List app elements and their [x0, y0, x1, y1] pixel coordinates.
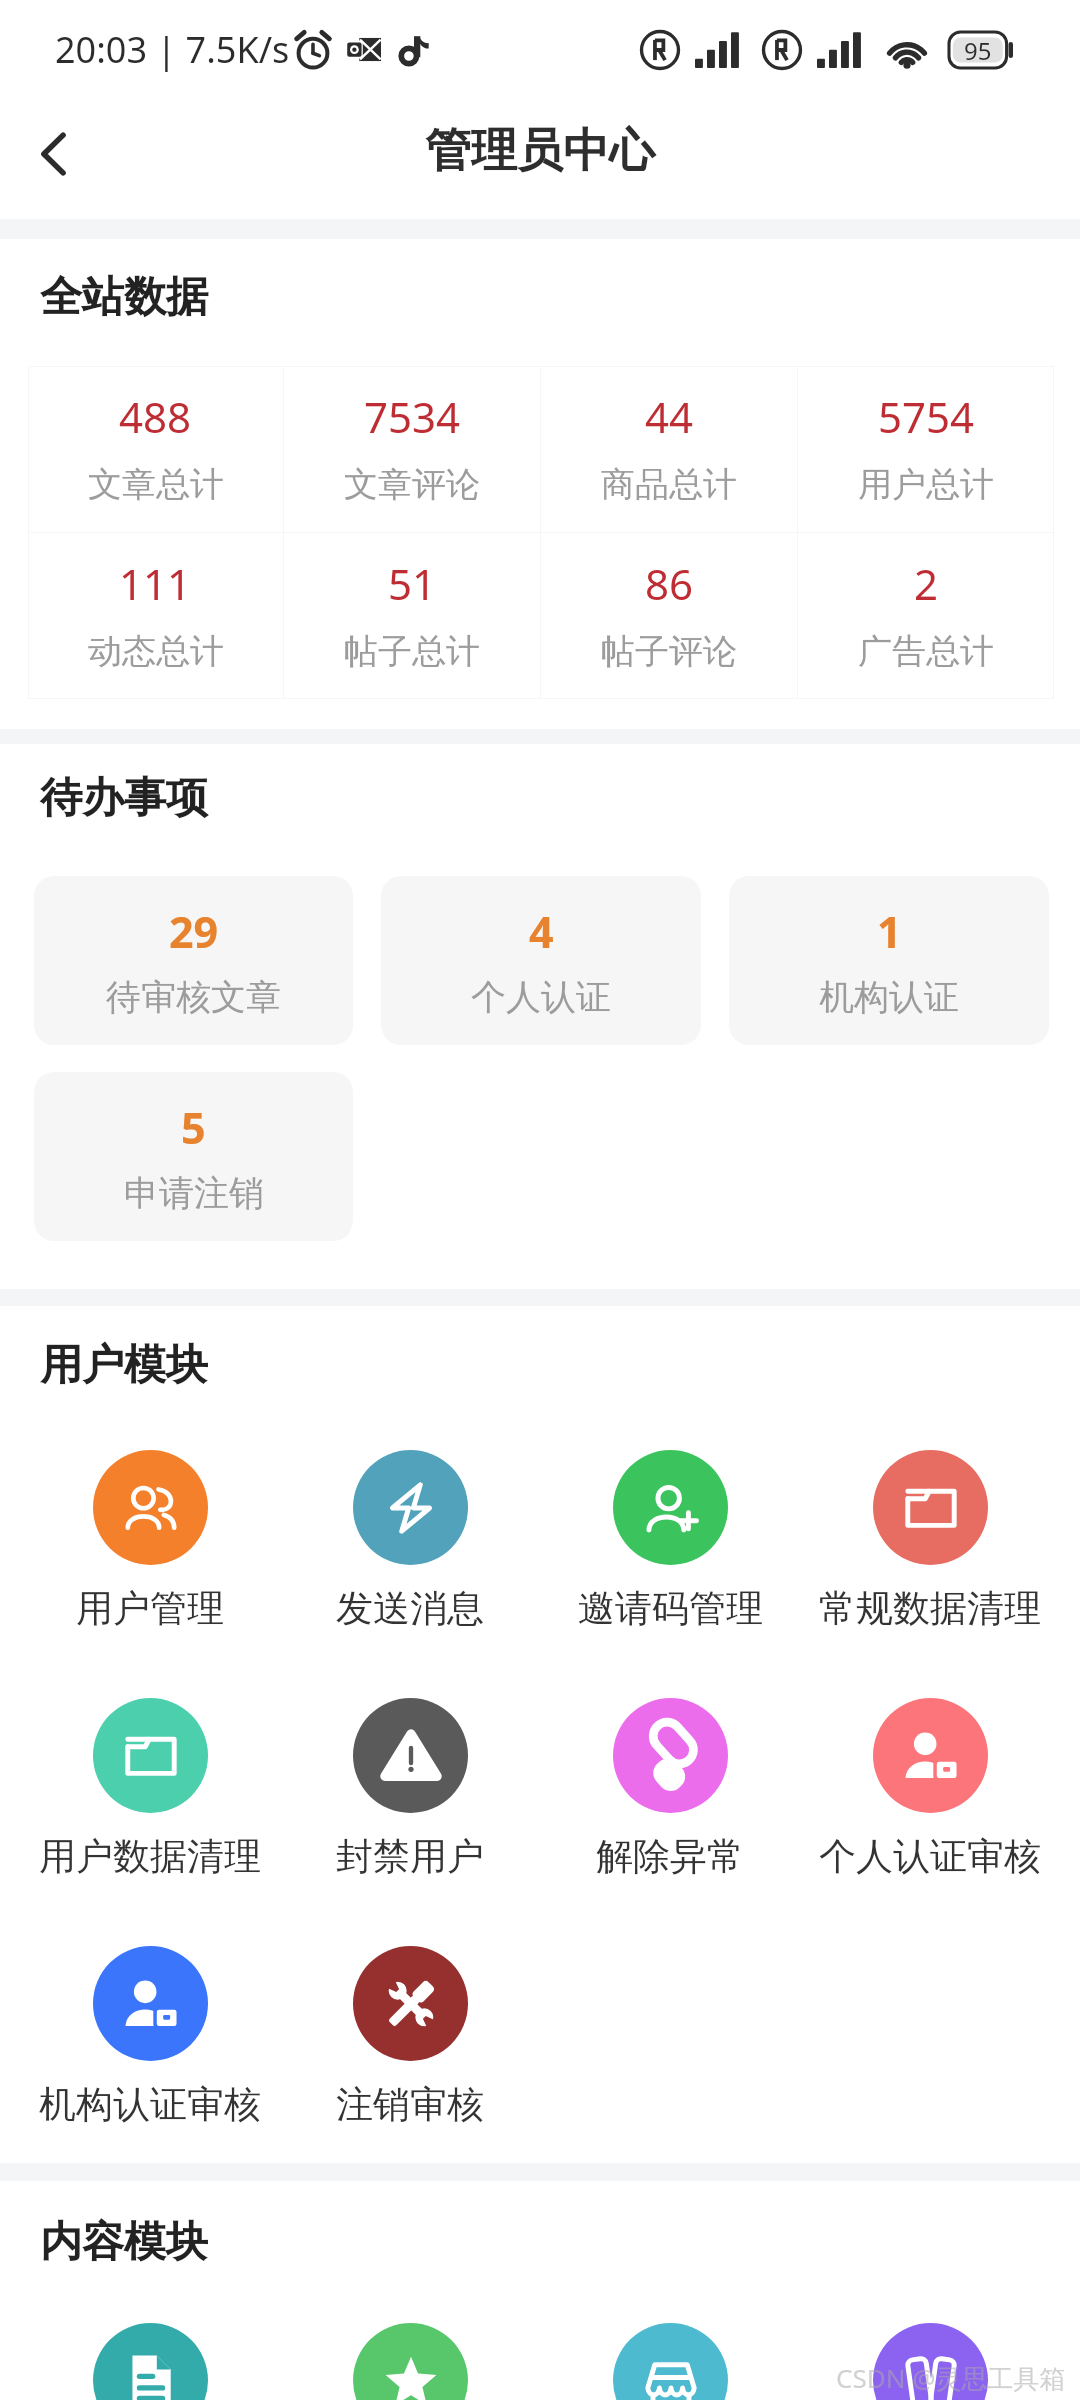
staticText: 4 [529, 902, 554, 961]
staticText: 用户模块 [40, 1339, 208, 1392]
staticText: 20:03 | 7.5K/s [55, 25, 290, 74]
staticText: 5754 [878, 388, 975, 445]
staticText: 个人认证审核 [819, 1833, 1041, 1880]
button[interactable]: 1 [729, 876, 1049, 1045]
button[interactable]: 注销审核 [280, 1946, 540, 2128]
staticText: 申请注销 [124, 1171, 264, 1215]
staticText: 待审核文章 [106, 975, 281, 1019]
button[interactable]: 解除异常 [540, 1698, 800, 1880]
staticText: 帖子总计 [344, 630, 480, 673]
staticText: 机构认证 [819, 975, 959, 1019]
staticText: 1 [877, 902, 902, 961]
button[interactable]: 常规数据清理 [800, 1450, 1060, 1632]
staticText: 常规数据清理 [819, 1585, 1041, 1632]
staticText: 动态总计 [88, 630, 224, 673]
button[interactable]: 个人认证审核 [800, 1698, 1060, 1880]
button[interactable]: 51 [284, 533, 540, 699]
staticText: 封禁用户 [336, 1833, 484, 1880]
staticText: 待办事项 [40, 772, 208, 825]
button[interactable]: 发送消息 [280, 1450, 540, 1632]
staticText: 用户总计 [858, 463, 994, 506]
staticText: 解除异常 [596, 1833, 744, 1880]
staticText: 5 [181, 1098, 206, 1157]
staticText: 488 [119, 388, 192, 445]
button[interactable]: 书籍管理 [800, 2360, 1060, 2400]
button[interactable]: 封禁用户 [280, 1698, 540, 1880]
staticText: 注销审核 [336, 2081, 484, 2128]
button[interactable]: 用户管理 [20, 1450, 280, 1632]
button[interactable]: 5754 [798, 366, 1054, 532]
button[interactable]: 4 [381, 876, 701, 1045]
button[interactable]: 29 [34, 876, 353, 1045]
button[interactable]: 44 [541, 366, 797, 532]
staticText: 51 [388, 555, 437, 612]
staticText: 文章评论 [344, 463, 480, 506]
staticText: 111 [119, 555, 192, 612]
staticText: 29 [169, 902, 219, 961]
button[interactable]: 2 [798, 533, 1054, 699]
button[interactable]: 文章管理 [20, 2360, 280, 2400]
staticText: 管理员中心 [425, 122, 655, 180]
staticText: 用户管理 [76, 1585, 224, 1632]
staticText: 发送消息 [336, 1585, 484, 1632]
staticText: 机构认证审核 [39, 2081, 261, 2128]
button[interactable]: 用户数据清理 [20, 1698, 280, 1880]
button[interactable]: 邀请码管理 [540, 1450, 800, 1632]
staticText: 邀请码管理 [578, 1585, 763, 1632]
button[interactable]: 86 [541, 533, 797, 699]
button[interactable]: Back [0, 99, 105, 219]
staticText: 2 [914, 555, 939, 612]
staticText: 95 [964, 34, 992, 67]
staticText: 广告总计 [858, 630, 994, 673]
button[interactable]: 机构认证审核 [20, 1946, 280, 2128]
button[interactable]: 488 [28, 366, 283, 532]
staticText: 86 [645, 555, 694, 612]
staticText: 商品总计 [601, 463, 737, 506]
button[interactable]: 精选推荐 [280, 2360, 540, 2400]
staticText: 内容模块 [40, 2216, 208, 2269]
staticText: 7534 [364, 388, 461, 445]
staticText: 个人认证 [471, 975, 611, 1019]
button[interactable]: 111 [28, 533, 283, 699]
staticText: 文章总计 [88, 463, 224, 506]
button[interactable]: 商品管理 [540, 2360, 800, 2400]
button[interactable]: 7534 [284, 366, 540, 532]
staticText: 帖子评论 [601, 630, 737, 673]
staticText: 全站数据 [40, 271, 208, 324]
staticText: 44 [645, 388, 694, 445]
staticText: CSDN @灵思工具箱 [836, 2360, 1066, 2396]
button[interactable]: 5 [34, 1072, 353, 1241]
staticText: 用户数据清理 [39, 1833, 261, 1880]
